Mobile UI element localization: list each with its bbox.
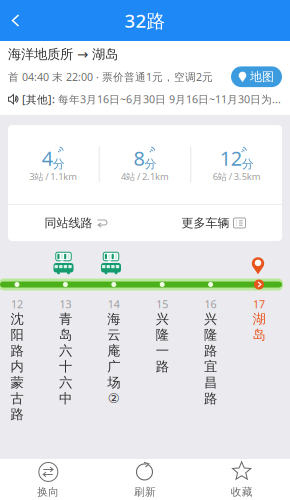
staticText: 沈 (10, 311, 23, 327)
staticText: 岛 (252, 327, 265, 343)
staticText: 隆 (156, 327, 169, 343)
staticText: 更多车辆 (181, 216, 229, 230)
staticText: 场 (107, 374, 120, 391)
staticText: 海洋地质所 → 湖岛 (8, 46, 118, 62)
staticText: 青 (59, 311, 72, 327)
staticText: 宜 (204, 358, 217, 375)
staticText: 分 (144, 156, 156, 171)
staticText: 分 (242, 156, 254, 171)
staticText: 6站 / 3.5km (213, 170, 261, 183)
button[interactable]: 同站线路 (8, 205, 145, 241)
staticText: [其他]: (22, 92, 55, 106)
staticText: 分 (53, 156, 65, 171)
button[interactable]: 更多车辆 (145, 205, 282, 241)
staticText: 8 (133, 145, 144, 171)
staticText: 庵 (107, 343, 120, 359)
button[interactable]: Back (0, 1, 34, 39)
staticText: 路 (204, 343, 217, 359)
staticText: 换向 (37, 485, 59, 498)
staticText: ② (108, 391, 120, 406)
staticText: 路 (10, 406, 23, 423)
staticText: 16 (205, 297, 217, 311)
button[interactable]: 收藏 (193, 454, 290, 500)
staticText: 3站 / 1.1km (29, 170, 77, 183)
staticText: 4站 / 2.1km (121, 170, 169, 183)
staticText: 32路 (124, 8, 165, 33)
button[interactable]: 换向 (0, 454, 97, 500)
staticText: 14 (108, 297, 120, 311)
staticText: 云 (107, 327, 120, 343)
staticText: 兴 (156, 311, 169, 327)
button[interactable]: 地图 (231, 66, 282, 87)
staticText: 广 (107, 358, 120, 375)
button[interactable]: 刷新 (97, 454, 193, 500)
staticText: 隆 (204, 327, 217, 343)
staticText: 路 (10, 343, 23, 359)
staticText: 兴 (204, 311, 217, 327)
staticText: 地图 (250, 69, 274, 84)
staticText: 十 (59, 358, 72, 375)
staticText: 一 (156, 343, 169, 359)
staticText: 12 (11, 297, 23, 311)
staticText: 中 (59, 390, 72, 407)
staticText: 15 (156, 297, 168, 311)
staticText: 岛 (59, 327, 72, 343)
staticText: 同站线路 (44, 216, 92, 230)
staticText: 17 (253, 297, 265, 311)
staticText: 昌 (204, 374, 217, 391)
staticText: 4 (42, 145, 53, 171)
staticText: 路 (204, 390, 217, 407)
staticText: 首 04:40 末 22:00 · 票价普通1元，空调2元 (8, 70, 213, 84)
staticText: 12 (220, 145, 242, 171)
staticText: 收藏 (231, 485, 253, 498)
staticText: 每年3月16日~6月30日 9月16日~11月30日为... (58, 92, 281, 106)
staticText: 蒙 (10, 374, 23, 391)
staticText: 阳 (10, 327, 23, 343)
staticText: 海 (107, 311, 120, 327)
staticText: 六 (59, 343, 72, 359)
staticText: 刷新 (134, 485, 156, 498)
staticText: 内 (10, 358, 23, 375)
staticText: 路 (156, 358, 169, 375)
staticText: 13 (59, 297, 71, 311)
staticText: 湖 (252, 311, 265, 327)
staticText: 六 (59, 374, 72, 391)
staticText: 古 (10, 390, 23, 407)
